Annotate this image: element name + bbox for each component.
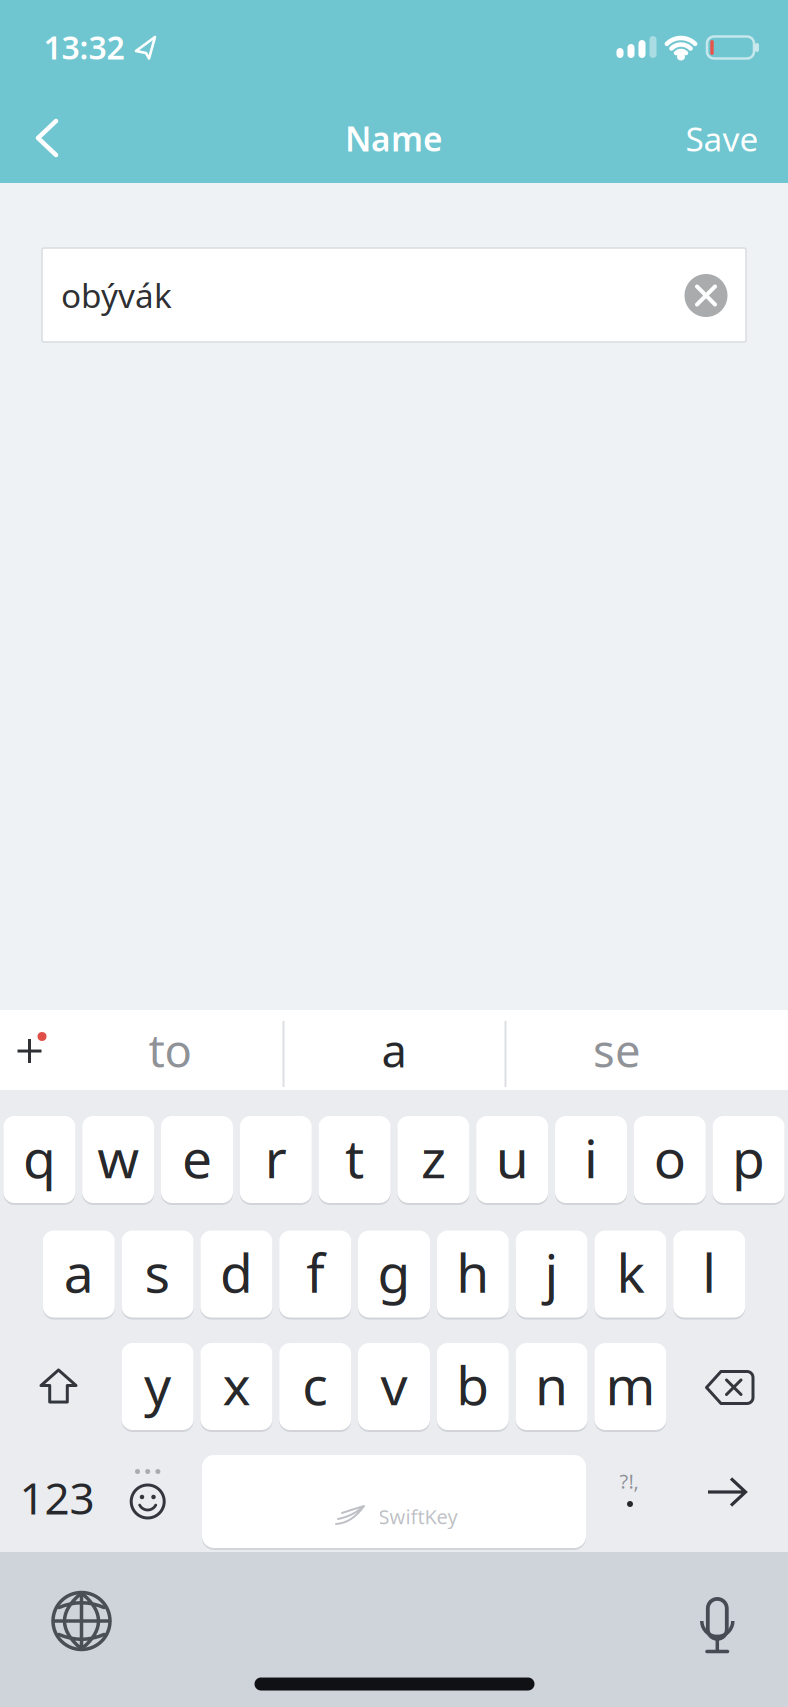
button[interactable]: Name text field xyxy=(42,248,746,342)
button[interactable]: Punctuation xyxy=(595,1455,665,1548)
button[interactable]: Save xyxy=(685,116,758,161)
staticText: f xyxy=(306,1237,324,1307)
button[interactable]: u xyxy=(476,1115,548,1204)
button[interactable]: Space xyxy=(202,1454,586,1549)
staticText: se xyxy=(593,1020,641,1080)
button[interactable]: 123 xyxy=(7,1455,107,1548)
staticText: t xyxy=(345,1122,364,1193)
button[interactable]: x xyxy=(200,1342,272,1431)
staticText: a xyxy=(381,1020,406,1080)
staticText: 123 xyxy=(19,1468,94,1527)
staticText: SwiftKey xyxy=(378,1503,457,1530)
button[interactable]: Delete xyxy=(685,1343,775,1430)
staticText: q xyxy=(23,1122,56,1193)
staticText: j xyxy=(545,1237,559,1307)
button[interactable]: y xyxy=(122,1342,194,1431)
staticText: obývák xyxy=(61,273,172,317)
staticText: g xyxy=(377,1237,410,1307)
button[interactable]: Expand predictions xyxy=(0,1010,64,1090)
button[interactable]: Dictate xyxy=(686,1592,748,1662)
staticText: w xyxy=(97,1122,139,1193)
button[interactable]: b xyxy=(437,1342,509,1431)
staticText: Save xyxy=(685,116,758,161)
button[interactable]: Back xyxy=(25,110,69,166)
staticText: o xyxy=(654,1122,686,1193)
staticText: h xyxy=(456,1237,489,1307)
button[interactable]: q xyxy=(3,1115,75,1204)
staticText: v xyxy=(380,1349,407,1420)
staticText: u xyxy=(496,1122,529,1193)
staticText: i xyxy=(584,1122,598,1193)
button[interactable]: o xyxy=(634,1115,706,1204)
staticText: Name xyxy=(345,116,443,161)
button[interactable]: j xyxy=(516,1229,588,1318)
button[interactable]: n xyxy=(516,1342,588,1431)
staticText: p xyxy=(732,1122,765,1193)
button[interactable]: k xyxy=(594,1229,666,1318)
button[interactable]: Emoji xyxy=(113,1456,183,1546)
staticText: ?!, xyxy=(619,1468,638,1494)
button[interactable]: h xyxy=(437,1229,509,1318)
button[interactable]: l xyxy=(673,1229,745,1318)
button[interactable]: z xyxy=(397,1115,469,1204)
staticText: l xyxy=(702,1237,716,1307)
button[interactable]: p xyxy=(713,1115,785,1204)
staticText: e xyxy=(182,1122,212,1193)
button[interactable]: d xyxy=(200,1229,272,1318)
button[interactable]: w xyxy=(82,1115,154,1204)
staticText: 13:32 xyxy=(43,26,124,68)
button[interactable]: s xyxy=(122,1229,194,1318)
staticText: a xyxy=(64,1237,94,1307)
button[interactable]: f xyxy=(279,1229,351,1318)
staticText: y xyxy=(144,1349,171,1420)
button[interactable]: e xyxy=(161,1115,233,1204)
staticText: m xyxy=(605,1349,655,1420)
button[interactable]: i xyxy=(555,1115,627,1204)
staticText: r xyxy=(265,1122,287,1193)
button[interactable]: se xyxy=(527,1011,707,1089)
staticText: z xyxy=(421,1122,446,1193)
button[interactable]: Return xyxy=(682,1455,772,1548)
button[interactable]: Clear text xyxy=(684,274,727,317)
button[interactable]: a xyxy=(304,1011,484,1089)
staticText: x xyxy=(222,1349,250,1420)
staticText: s xyxy=(145,1237,171,1307)
staticText: n xyxy=(535,1349,568,1420)
button[interactable]: c xyxy=(279,1342,351,1431)
button[interactable]: t xyxy=(319,1115,391,1204)
button[interactable]: Switch keyboard xyxy=(53,1592,110,1649)
button[interactable]: g xyxy=(358,1229,430,1318)
staticText: d xyxy=(220,1237,253,1307)
staticText: to xyxy=(148,1020,191,1080)
button[interactable]: a xyxy=(43,1229,115,1318)
staticText: k xyxy=(616,1237,644,1307)
staticText: b xyxy=(456,1349,489,1420)
staticText: c xyxy=(302,1349,328,1420)
button[interactable]: Shift xyxy=(13,1343,103,1430)
button[interactable]: v xyxy=(358,1342,430,1431)
button[interactable]: to xyxy=(80,1011,260,1089)
button[interactable]: r xyxy=(240,1115,312,1204)
button[interactable]: m xyxy=(594,1342,666,1431)
